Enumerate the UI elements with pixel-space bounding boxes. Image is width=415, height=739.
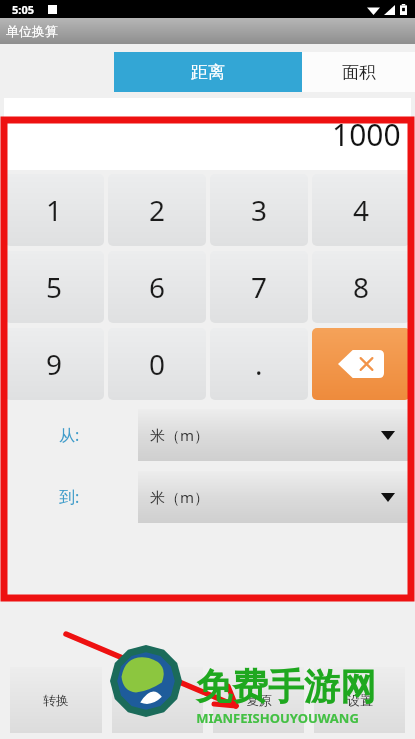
staticText: 设置 <box>347 692 373 708</box>
staticText: 5 <box>46 268 63 306</box>
button[interactable]: 0 <box>108 328 206 400</box>
staticText: MIANFEISHOUYOUWANG <box>196 709 359 727</box>
button[interactable]: 米（m） <box>138 409 409 461</box>
button[interactable]: . <box>210 328 308 400</box>
button[interactable]: 面积 <box>302 52 415 92</box>
staticText: 从: <box>59 424 80 446</box>
button[interactable]: 9 <box>5 328 104 400</box>
button[interactable]: 8 <box>312 251 410 323</box>
staticText: 距离 <box>191 62 225 83</box>
button[interactable]: 扩展 <box>112 667 203 733</box>
staticText: 7 <box>251 268 268 306</box>
staticText: 9 <box>46 345 63 383</box>
button[interactable]: 2 <box>108 174 206 246</box>
button[interactable]: 1000 <box>4 98 411 170</box>
staticText: 2 <box>149 191 166 229</box>
staticText: 到: <box>59 486 80 508</box>
button[interactable]: 设置 <box>314 667 405 733</box>
staticText: 扩展 <box>145 692 171 708</box>
button[interactable]: 6 <box>108 251 206 323</box>
button[interactable]: 4 <box>312 174 410 246</box>
button[interactable]: 复原 <box>213 667 304 733</box>
button[interactable]: 7 <box>210 251 308 323</box>
staticText: 8 <box>353 268 370 306</box>
button[interactable]: 3 <box>210 174 308 246</box>
staticText: 6 <box>149 268 166 306</box>
staticText: 米（m） <box>150 425 210 445</box>
button[interactable]: 5 <box>5 251 104 323</box>
staticText: 1000 <box>332 114 401 155</box>
button[interactable]: Backspace <box>312 328 410 400</box>
button[interactable]: 距离 <box>114 52 302 92</box>
button[interactable]: 转换 <box>10 667 102 733</box>
staticText: 免费手游网 <box>196 664 376 709</box>
staticText: 转换 <box>43 692 69 708</box>
staticText: 3 <box>251 191 268 229</box>
button[interactable]: 米（m） <box>138 471 409 523</box>
staticText: 4 <box>353 191 370 229</box>
staticText: 米（m） <box>150 487 210 507</box>
staticText: 复原 <box>246 692 272 708</box>
staticText: 1 <box>46 191 63 229</box>
staticText: 单位换算 <box>6 23 58 39</box>
staticText: . <box>255 345 263 383</box>
staticText: 面积 <box>342 62 376 83</box>
staticText: 0 <box>149 345 166 383</box>
staticText: 5:05 <box>12 2 34 17</box>
button[interactable]: 1 <box>5 174 104 246</box>
